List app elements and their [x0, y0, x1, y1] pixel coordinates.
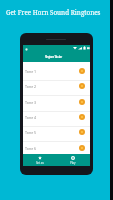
staticText: Ringtone Tabular: [45, 55, 62, 59]
staticText: Tone 3: [25, 100, 37, 105]
button[interactable]: Tone 3: [23, 97, 90, 112]
staticText: Tone 6: [25, 146, 37, 151]
staticText: Tone 4: [25, 115, 37, 120]
button[interactable]: Tone 5: [23, 127, 90, 142]
button[interactable]: Set as: [23, 154, 56, 166]
staticText: Get Free Horn Sound Ringtones: [6, 8, 101, 17]
button[interactable]: Tone 6: [23, 143, 90, 158]
staticText: Set as: [36, 161, 44, 165]
button[interactable]: Play: [56, 154, 90, 166]
button[interactable]: Tone 1: [23, 66, 90, 81]
button[interactable]: Tone 4: [23, 112, 90, 127]
staticText: Tone 5: [25, 130, 37, 135]
staticText: Tone 1: [25, 69, 37, 74]
staticText: Tone 2: [25, 84, 37, 89]
staticText: Play: [70, 161, 76, 165]
button[interactable]: Tone 2: [23, 81, 90, 96]
